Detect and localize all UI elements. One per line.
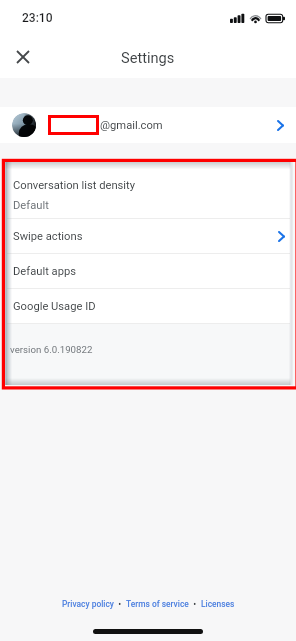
staticText: Swipe actions	[13, 230, 83, 243]
staticText: Settings	[121, 49, 175, 66]
button[interactable]: Conversation list density	[7, 162, 290, 218]
button[interactable]: Privacy policy	[62, 599, 114, 609]
staticText: •	[189, 599, 201, 609]
staticText: Conversation list density	[13, 179, 136, 192]
button[interactable]: Close	[7, 41, 39, 73]
staticText: •	[114, 599, 126, 609]
staticText: version 6.0.190822	[10, 344, 93, 355]
button[interactable]: Google Usage ID	[7, 289, 290, 323]
staticText: @gmail.com	[100, 119, 163, 132]
button[interactable]: Swipe actions	[7, 219, 290, 253]
button[interactable]: Terms of service	[126, 599, 189, 609]
button[interactable]: Open account	[265, 110, 295, 140]
staticText: Default apps	[13, 265, 76, 278]
button[interactable]: Default apps	[7, 254, 290, 288]
staticText: Google Usage ID	[13, 300, 96, 313]
staticText: 23:10	[22, 11, 53, 25]
button[interactable]: Licenses	[201, 599, 235, 609]
staticText: Default	[13, 199, 49, 212]
button[interactable]: @gmail.com	[0, 107, 296, 143]
